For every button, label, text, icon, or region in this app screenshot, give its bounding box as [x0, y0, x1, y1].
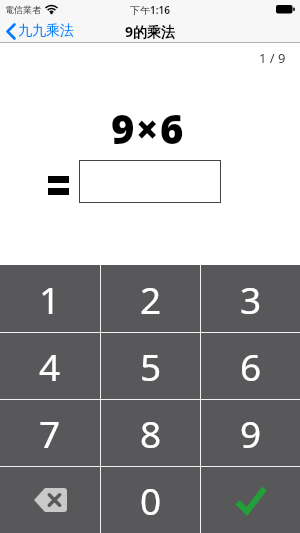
button[interactable]: [201, 467, 300, 533]
button[interactable]: [0, 467, 100, 533]
button[interactable]: 4: [0, 333, 100, 399]
button[interactable]: 九九乘法: [6, 19, 74, 43]
staticText: 6: [240, 341, 262, 391]
button[interactable]: 0: [101, 467, 200, 533]
staticText: 9: [240, 408, 262, 458]
button[interactable]: 1: [0, 265, 100, 332]
staticText: 電信業者: [5, 4, 41, 15]
staticText: 下午1:16: [130, 3, 170, 17]
staticText: 2: [140, 274, 162, 324]
button[interactable]: 3: [201, 265, 300, 332]
staticText: 9的乘法: [125, 22, 176, 41]
button[interactable]: 8: [101, 400, 200, 466]
staticText: 3: [240, 274, 262, 324]
button[interactable]: 7: [0, 400, 100, 466]
button[interactable]: 9: [201, 400, 300, 466]
staticText: 7: [39, 408, 61, 458]
button[interactable]: [79, 160, 221, 203]
button[interactable]: 5: [101, 333, 200, 399]
staticText: 9×6: [111, 101, 185, 155]
staticText: 九九乘法: [18, 22, 74, 40]
staticText: 1 / 9: [259, 49, 286, 67]
staticText: 4: [39, 341, 61, 391]
staticText: 8: [140, 408, 162, 458]
button[interactable]: 6: [201, 333, 300, 399]
button[interactable]: 2: [101, 265, 200, 332]
staticText: 1: [39, 274, 61, 324]
staticText: 5: [140, 341, 162, 391]
staticText: 0: [140, 475, 162, 525]
